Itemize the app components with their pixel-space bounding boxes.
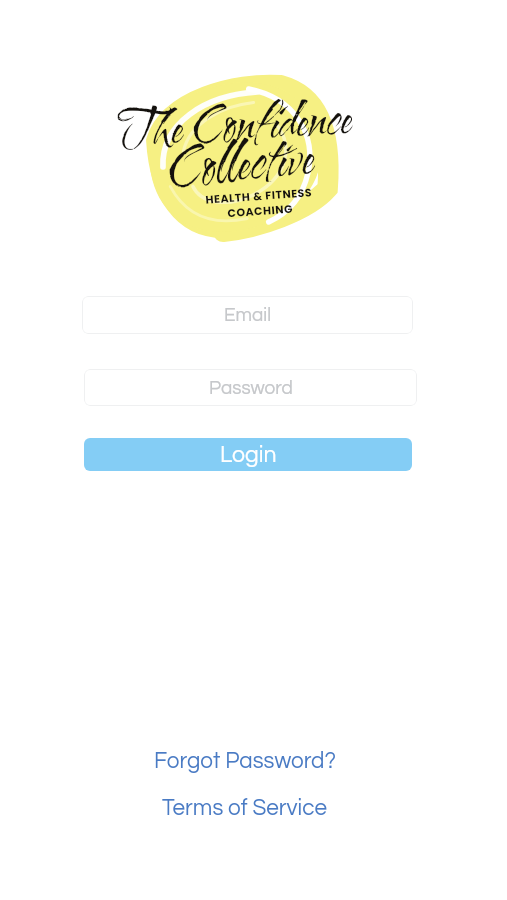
staticText: COACHING xyxy=(227,201,294,220)
button[interactable]: Forgot Password? xyxy=(111,744,378,778)
staticText: Collective xyxy=(166,122,316,190)
button[interactable]: Terms of Service xyxy=(111,791,378,825)
staticText: Password xyxy=(209,378,293,398)
staticText: Login xyxy=(220,443,277,467)
staticText: Terms of Service xyxy=(162,797,327,820)
button[interactable]: Password xyxy=(84,369,417,406)
staticText: HEALTH & FITNESS xyxy=(205,184,313,207)
button[interactable]: Email xyxy=(82,296,413,334)
staticText: Forgot Password? xyxy=(154,750,336,773)
staticText: Email xyxy=(224,305,272,325)
staticText: The Confidence xyxy=(116,85,353,158)
button[interactable]: Login xyxy=(84,438,412,471)
